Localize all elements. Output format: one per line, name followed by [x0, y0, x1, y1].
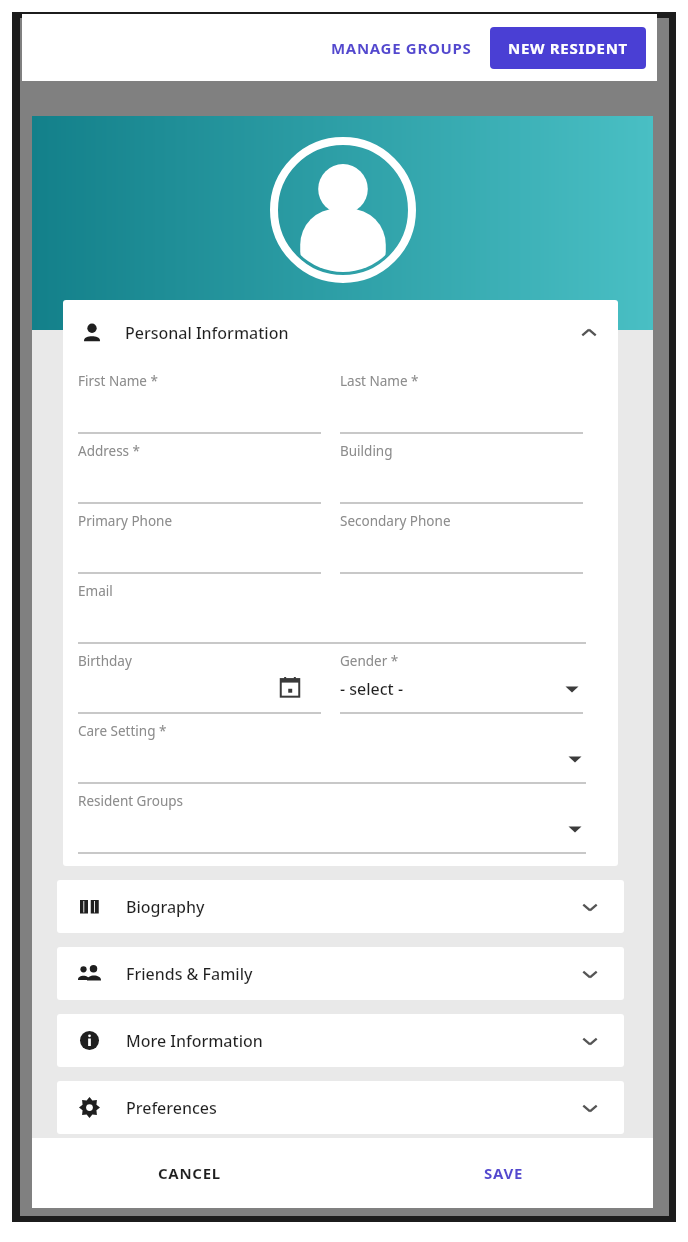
button[interactable]: First Name * — [78, 372, 321, 434]
staticText: Preferences — [126, 1097, 217, 1119]
staticText: Last Name * — [340, 372, 419, 390]
button[interactable]: MANAGE GROUPS — [319, 30, 484, 66]
other: Open list — [563, 680, 581, 698]
button[interactable]: SAVE — [468, 1153, 539, 1193]
staticText: MANAGE GROUPS — [331, 38, 472, 58]
staticText: Biography — [126, 896, 205, 918]
staticText: Primary Phone — [78, 512, 173, 530]
button[interactable]: Gender * — [340, 652, 583, 714]
button[interactable]: Last Name * — [340, 372, 583, 434]
staticText: Building — [340, 442, 393, 460]
button[interactable]: Resident photo — [270, 137, 416, 283]
button[interactable]: NEW RESIDENT — [490, 27, 646, 69]
button[interactable]: Resident Groups — [78, 792, 586, 854]
staticText: First Name * — [78, 372, 158, 390]
staticText: Address * — [78, 442, 141, 460]
staticText: Secondary Phone — [340, 512, 451, 530]
button[interactable]: Care Setting * — [78, 722, 586, 784]
staticText: More Information — [126, 1030, 263, 1052]
button[interactable]: Secondary Phone — [340, 512, 583, 574]
staticText: CANCEL — [158, 1163, 221, 1183]
staticText: Resident Groups — [78, 792, 184, 810]
button[interactable]: Preferences — [57, 1081, 624, 1134]
other: Pick date — [279, 676, 301, 698]
button[interactable]: Personal Information — [63, 300, 618, 366]
staticText: Gender * — [340, 652, 399, 670]
staticText: Email — [78, 582, 113, 600]
staticText: Care Setting * — [78, 722, 167, 740]
staticText: NEW RESIDENT — [508, 38, 628, 58]
button[interactable]: Biography — [57, 880, 624, 933]
other: Open list — [566, 820, 584, 838]
staticText: Birthday — [78, 652, 132, 670]
staticText: Personal Information — [125, 322, 289, 344]
button[interactable]: Building — [340, 442, 583, 504]
staticText: SAVE — [484, 1163, 523, 1183]
staticText: Friends & Family — [126, 963, 253, 985]
button[interactable]: Primary Phone — [78, 512, 321, 574]
staticText: - select - — [340, 678, 404, 700]
button[interactable]: CANCEL — [142, 1153, 237, 1193]
button[interactable]: Email — [78, 582, 586, 644]
button[interactable]: Address * — [78, 442, 321, 504]
button[interactable]: Birthday — [78, 652, 321, 714]
button[interactable]: More Information — [57, 1014, 624, 1067]
button[interactable]: Friends & Family — [57, 947, 624, 1000]
other: Open list — [566, 750, 584, 768]
